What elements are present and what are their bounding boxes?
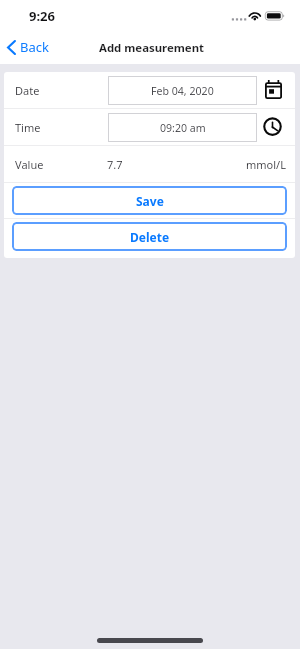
other: Pick time <box>263 117 282 137</box>
staticText: Add measurement <box>99 40 205 56</box>
button[interactable]: Back <box>0 33 59 61</box>
staticText: 9:26 <box>29 7 55 25</box>
button[interactable]: Save <box>12 186 287 215</box>
staticText: Feb 04, 2020 <box>151 84 214 98</box>
staticText: Delete <box>130 229 170 245</box>
button[interactable]: 09:20 am <box>108 113 257 142</box>
staticText: 7.7 <box>107 157 123 172</box>
staticText: Time <box>15 120 41 135</box>
staticText: 09:20 am <box>160 121 206 135</box>
button[interactable]: Feb 04, 2020 <box>108 76 257 105</box>
other: Pick date <box>265 80 282 100</box>
staticText: Date <box>15 83 40 98</box>
staticText: Value <box>15 157 44 172</box>
staticText: Back <box>20 38 49 56</box>
button[interactable]: Delete <box>12 222 287 251</box>
staticText: Save <box>136 193 164 209</box>
staticText: mmol/L <box>246 157 286 172</box>
